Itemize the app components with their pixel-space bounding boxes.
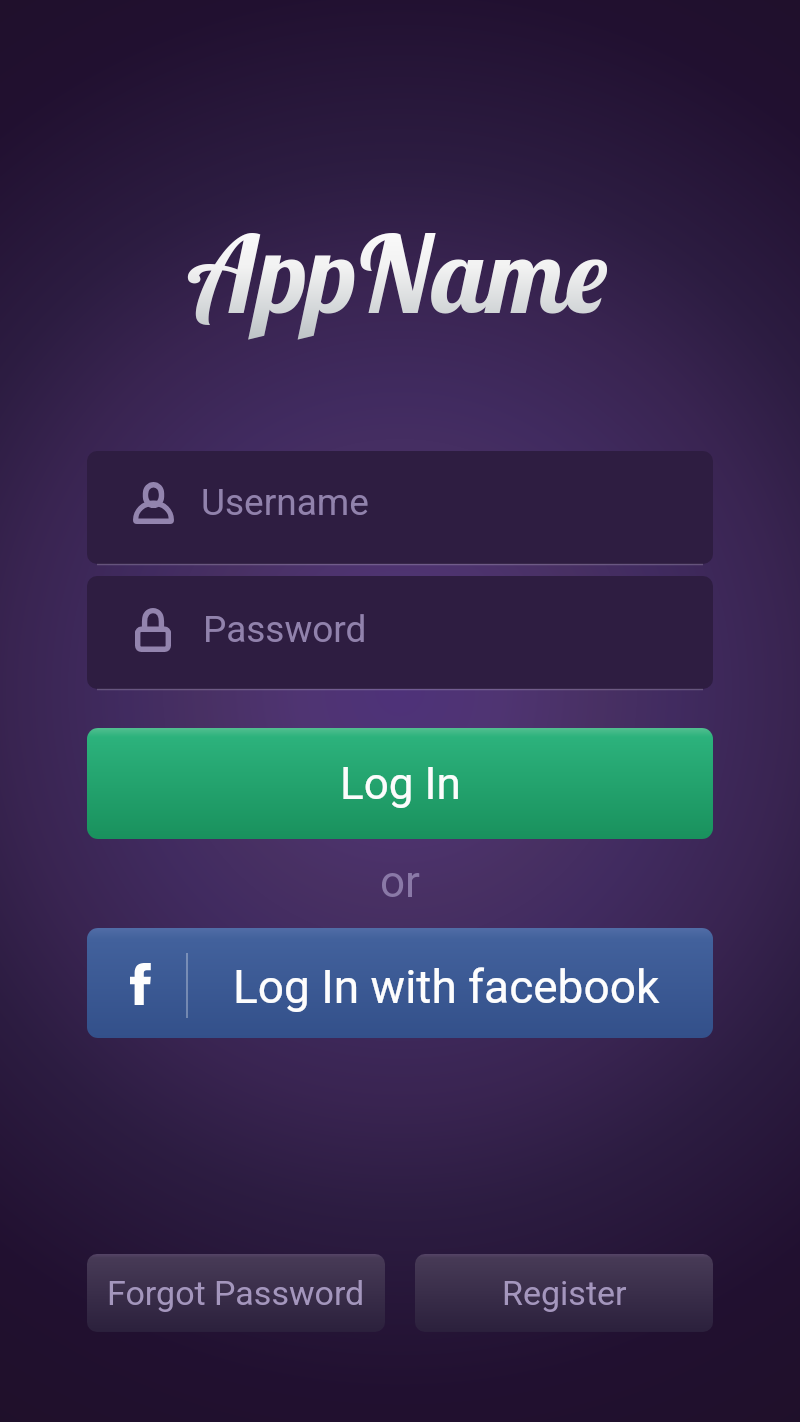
button[interactable]: Log in with Facebook	[87, 928, 713, 1038]
staticText: Username	[201, 481, 369, 524]
staticText: Password	[203, 608, 367, 651]
staticText: Log In	[340, 758, 461, 810]
button[interactable]: Register	[415, 1254, 713, 1332]
other: Log in with Facebook	[130, 963, 151, 1005]
other: Password	[135, 610, 171, 652]
staticText: Forgot Password	[107, 1273, 365, 1313]
other: User	[133, 482, 174, 524]
staticText: AppName	[192, 207, 609, 340]
button[interactable]: Forgot Password	[87, 1254, 385, 1332]
button[interactable]: Password	[87, 576, 713, 689]
button[interactable]: User	[87, 451, 713, 564]
staticText: or	[380, 856, 421, 908]
button[interactable]: Log In	[87, 728, 713, 839]
staticText: Log In with facebook	[233, 960, 660, 1014]
staticText: Register	[502, 1273, 627, 1313]
